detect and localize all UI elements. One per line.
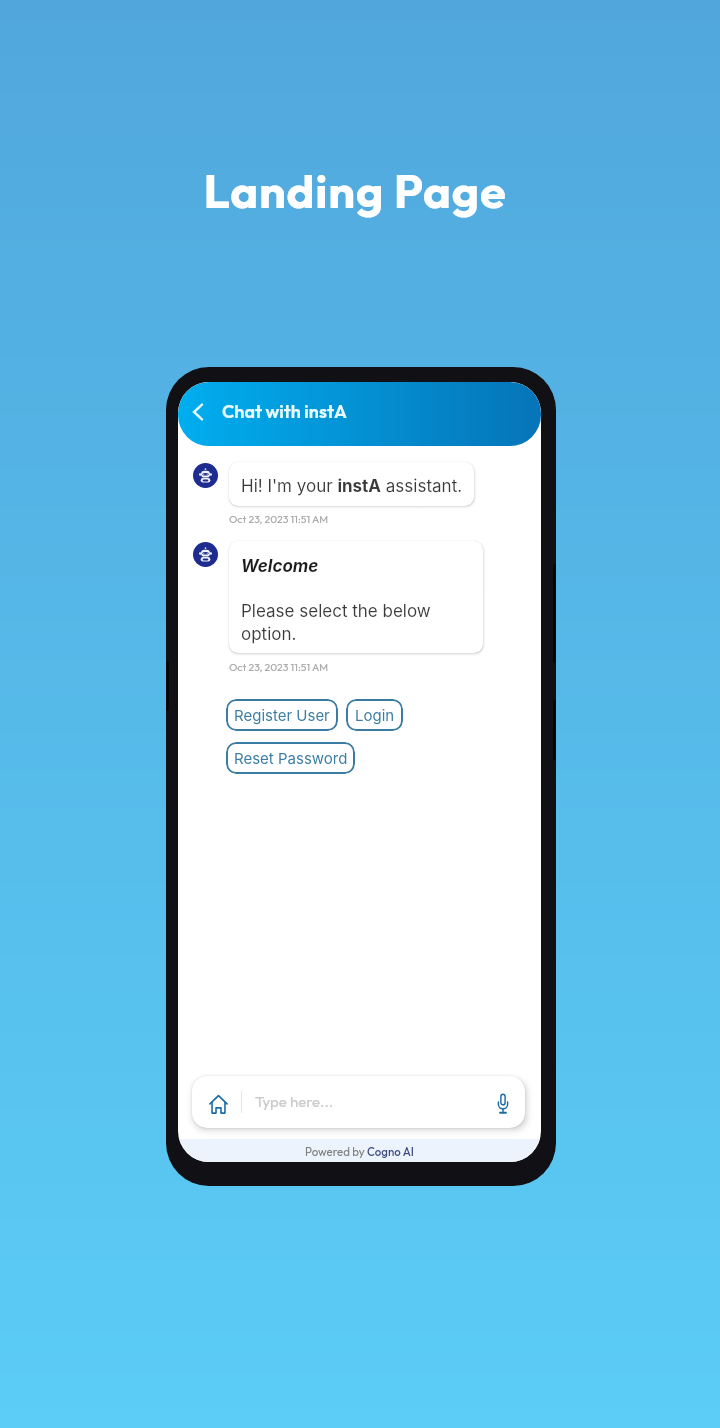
staticText: Type here...: [255, 1092, 334, 1111]
button[interactable]: Register User: [226, 699, 338, 731]
button[interactable]: Home: [203, 1089, 233, 1119]
staticText: Chat with instA: [222, 400, 347, 423]
staticText: Reset Password: [234, 749, 348, 767]
button[interactable]: Voice input: [488, 1089, 517, 1118]
staticText: Welcome: [241, 556, 319, 577]
staticText: Oct 23, 2023 11:51 AM: [229, 660, 328, 673]
staticText: Login: [355, 706, 395, 724]
staticText: Please select the below option.: [241, 601, 441, 644]
button[interactable]: Reset Password: [226, 742, 355, 774]
button[interactable]: Back: [183, 397, 213, 427]
staticText: Oct 23, 2023 11:51 AM: [229, 512, 328, 525]
staticText: Hi! I'm your instA assistant.: [241, 476, 463, 497]
staticText: Landing Page: [203, 161, 507, 220]
button[interactable]: Login: [346, 699, 403, 731]
staticText: Register User: [234, 706, 330, 724]
staticText: Powered by Cogno AI: [305, 1144, 414, 1158]
